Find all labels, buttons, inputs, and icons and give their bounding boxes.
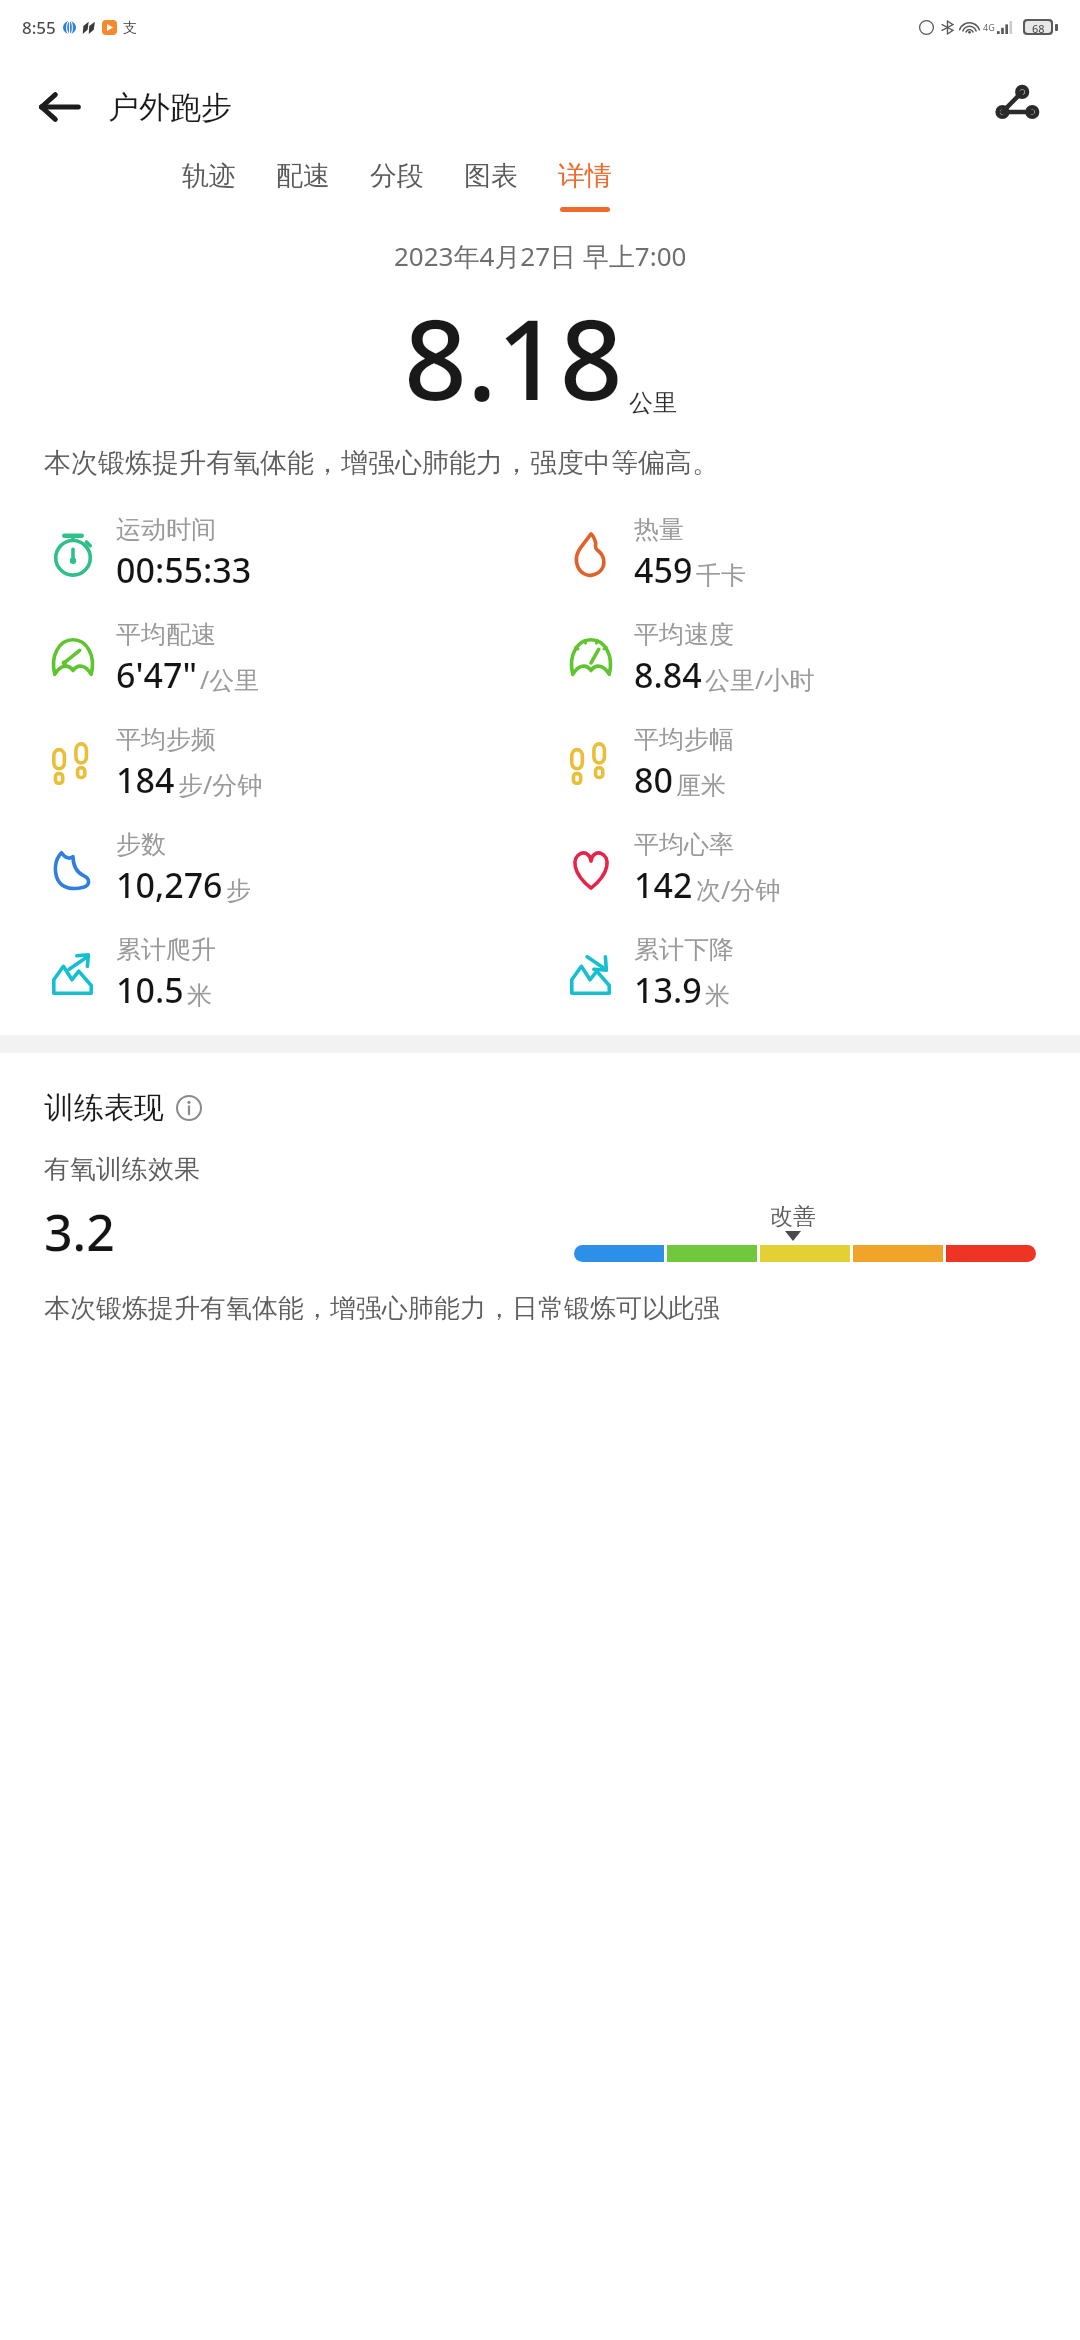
staticText: 13.9 [634, 967, 702, 1013]
button[interactable]: 训练表现 [44, 1089, 202, 1127]
staticText: 459 [634, 547, 693, 593]
other: Info [176, 1095, 202, 1121]
staticText: 平均速度 [634, 619, 734, 650]
staticText: 公里 [629, 388, 677, 418]
staticText: 户外跑步 [108, 88, 232, 127]
staticText: /公里 [200, 662, 260, 696]
staticText: 步数 [116, 829, 166, 860]
staticText: 平均心率 [634, 829, 734, 860]
staticText: 详情 [558, 159, 612, 193]
staticText: 米 [705, 980, 730, 1011]
staticText: 184 [116, 757, 175, 803]
button[interactable]: 累计下降 [562, 934, 1080, 1013]
staticText: 训练表现 [44, 1089, 164, 1127]
staticText: 142 [634, 862, 693, 908]
button[interactable]: 运动时间 [44, 514, 562, 593]
staticText: 10,276 [116, 862, 223, 908]
staticText: 公里/小时 [705, 662, 815, 696]
button[interactable]: 平均配速 [44, 619, 562, 698]
staticText: 平均步幅 [634, 724, 734, 755]
button[interactable]: 累计爬升 [44, 934, 562, 1013]
staticText: 10.5 [116, 967, 184, 1013]
other: Back [36, 84, 82, 130]
staticText: 支 [123, 19, 137, 37]
staticText: 2023年4月27日 早上7:00 [394, 238, 687, 274]
button[interactable]: 分段 [368, 159, 426, 212]
button[interactable]: 平均速度 [562, 619, 1080, 698]
staticText: 平均配速 [116, 619, 216, 650]
staticText: 分段 [370, 159, 424, 193]
button[interactable]: Back [30, 78, 238, 136]
button[interactable]: 步数 [44, 829, 562, 908]
staticText: 3.2 [44, 1198, 115, 1266]
staticText: 00:55:33 [116, 547, 252, 593]
staticText: 运动时间 [116, 514, 216, 545]
staticText: 本次锻炼提升有氧体能，增强心肺能力，强度中等偏高。 [44, 446, 1036, 480]
button[interactable]: 轨迹 [180, 159, 238, 212]
staticText: 图表 [464, 159, 518, 193]
staticText: 68 [1032, 21, 1045, 33]
staticText: 平均步频 [116, 724, 216, 755]
staticText: 千卡 [696, 560, 746, 591]
staticText: 有氧训练效果 [44, 1153, 200, 1186]
staticText: 累计下降 [634, 934, 734, 965]
staticText: 厘米 [676, 770, 726, 801]
staticText: 80 [634, 757, 673, 803]
staticText: 8.18 [404, 282, 623, 432]
staticText: 次/分钟 [696, 872, 781, 906]
button[interactable]: 配速 [274, 159, 332, 212]
button[interactable]: 平均心率 [562, 829, 1080, 908]
button[interactable]: 平均步频 [44, 724, 562, 803]
staticText: 6'47" [116, 652, 197, 698]
staticText: 米 [187, 980, 212, 1011]
staticText: 步/分钟 [178, 767, 263, 801]
button[interactable]: 图表 [462, 159, 520, 212]
staticText: 本次锻炼提升有氧体能，增强心肺能力，日常锻炼可以此强 [44, 1292, 720, 1325]
button[interactable]: 平均步幅 [562, 724, 1080, 803]
staticText: 热量 [634, 514, 684, 545]
staticText: 步 [226, 875, 251, 906]
staticText: 轨迹 [182, 159, 236, 193]
staticText: 配速 [276, 159, 330, 193]
staticText: 4G [983, 21, 995, 33]
button[interactable]: Share [990, 79, 1046, 135]
staticText: 累计爬升 [116, 934, 216, 965]
button[interactable]: 热量 [562, 514, 1080, 593]
staticText: 改善 [770, 1202, 816, 1231]
button[interactable]: 详情 [556, 159, 614, 212]
staticText: 8:55 [22, 16, 56, 39]
staticText: 8.84 [634, 652, 702, 698]
